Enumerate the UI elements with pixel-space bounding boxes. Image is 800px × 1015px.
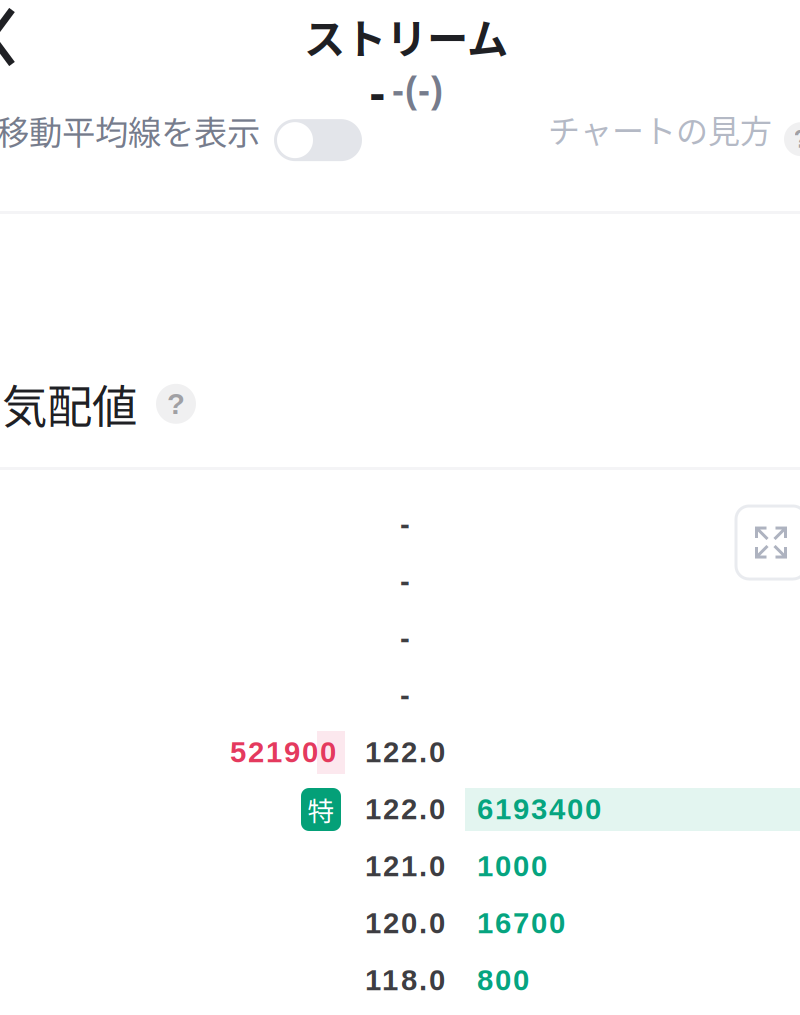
- staticText: 800: [477, 964, 529, 996]
- staticText: -: [400, 622, 410, 654]
- staticText: 118.0: [365, 964, 445, 996]
- staticText: 特: [307, 790, 334, 829]
- staticText: 16700: [477, 907, 565, 939]
- staticText: -: [400, 679, 410, 711]
- staticText: 121.0: [365, 850, 445, 882]
- staticText: ストリーム: [304, 6, 508, 66]
- staticText: チャートの見方: [548, 106, 772, 152]
- button[interactable]: 戻る: [0, 0, 36, 75]
- staticText: 122.0: [365, 736, 445, 768]
- staticText: -(-): [392, 70, 443, 110]
- staticText: 122.0: [365, 793, 445, 825]
- staticText: ?: [167, 387, 185, 420]
- button[interactable]: チャートの見方: [548, 116, 800, 162]
- staticText: -: [369, 72, 386, 118]
- button[interactable]: 移動平均線を表示: [0, 116, 362, 164]
- staticText: -: [400, 508, 410, 540]
- staticText: 1000: [477, 850, 547, 882]
- staticText: -: [400, 565, 410, 597]
- staticText: 120.0: [365, 907, 445, 939]
- staticText: 気配値: [2, 371, 137, 437]
- button[interactable]: 気配値とは: [156, 384, 196, 424]
- staticText: 521900: [230, 736, 336, 768]
- staticText: ?: [793, 125, 800, 153]
- button[interactable]: 拡大表示: [736, 506, 800, 579]
- staticText: 移動平均線を表示: [0, 106, 260, 154]
- staticText: 6193400: [477, 793, 601, 825]
